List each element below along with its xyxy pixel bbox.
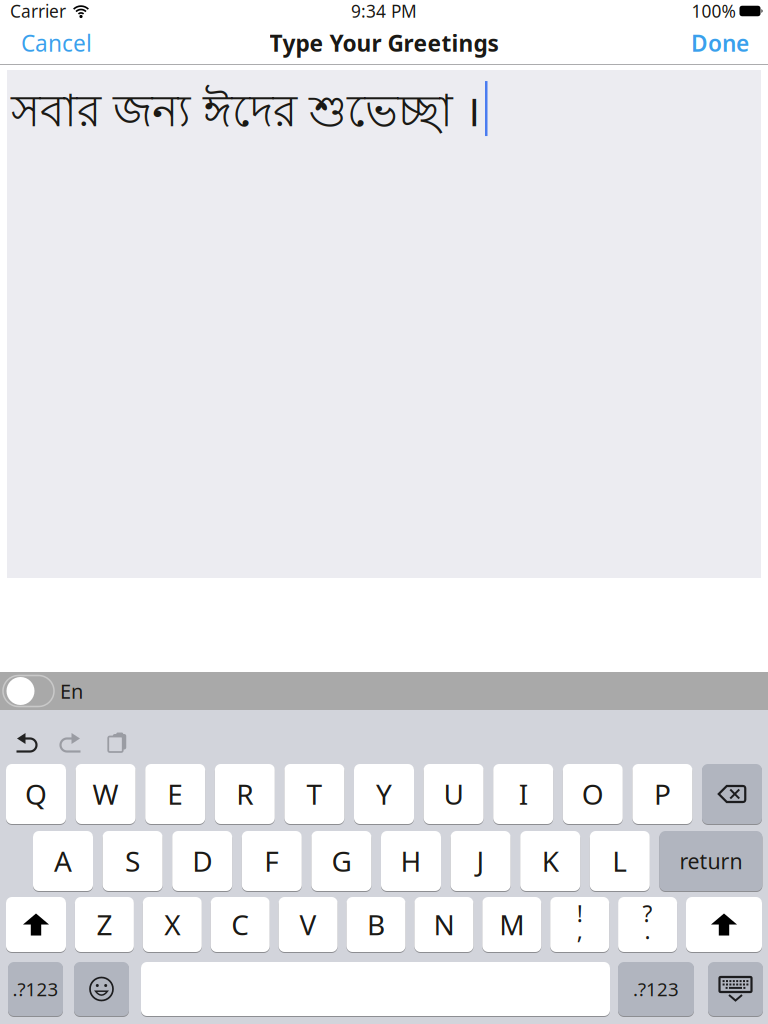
button[interactable]: B	[346, 897, 405, 952]
staticText: Carrier	[10, 0, 66, 22]
staticText: C	[231, 906, 249, 943]
staticText: return	[679, 847, 742, 875]
staticText: P	[654, 775, 671, 813]
button[interactable]: Undo	[15, 732, 38, 753]
staticText: Z	[96, 906, 112, 943]
button[interactable]: Paste	[82, 731, 130, 753]
button[interactable]: I	[493, 764, 553, 824]
staticText: .?123	[633, 977, 679, 1001]
staticText: A	[54, 842, 72, 880]
staticText: W	[93, 775, 119, 813]
button[interactable]: Shift	[686, 897, 762, 952]
staticText: F	[264, 842, 279, 880]
button[interactable]: S	[103, 831, 163, 891]
staticText: S	[125, 842, 140, 880]
button[interactable]: E	[145, 764, 205, 824]
button[interactable]: U	[424, 764, 484, 824]
button[interactable]: Delete	[702, 764, 762, 824]
staticText: D	[192, 842, 212, 880]
button[interactable]: .?123	[8, 962, 63, 1016]
button[interactable]: N	[414, 897, 473, 952]
button[interactable]: X	[143, 897, 202, 952]
button[interactable]: return	[659, 831, 762, 891]
button[interactable]: ?	[618, 897, 677, 952]
staticText: Cancel	[21, 28, 92, 58]
button[interactable]: W	[76, 764, 136, 824]
button[interactable]: O	[563, 764, 623, 824]
button[interactable]: Hide Keyboard	[708, 962, 763, 1016]
button[interactable]: Shift	[6, 897, 66, 952]
staticText: X	[164, 906, 180, 943]
button[interactable]: Switch keyboard language	[2, 675, 55, 706]
button[interactable]: Z	[75, 897, 134, 952]
button[interactable]: P	[632, 764, 692, 824]
button[interactable]: T	[284, 764, 344, 824]
button[interactable]: Cancel	[21, 28, 92, 58]
button[interactable]: Redo	[38, 732, 82, 753]
staticText: সবার জন্য ঈদের শুভেচ্ছা ।	[11, 80, 481, 144]
staticText: K	[542, 842, 559, 880]
staticText: R	[236, 775, 253, 813]
button[interactable]: J	[451, 831, 511, 891]
button[interactable]: F	[242, 831, 302, 891]
staticText: 100%	[691, 0, 735, 22]
staticText: ,	[577, 915, 583, 946]
staticText: Y	[376, 775, 392, 813]
button[interactable]: H	[381, 831, 441, 891]
button[interactable]: D	[172, 831, 232, 891]
staticText: J	[477, 842, 485, 880]
button[interactable]: .?123	[618, 962, 694, 1016]
staticText: E	[167, 775, 183, 813]
staticText: .?123	[12, 977, 58, 1001]
button[interactable]: Y	[354, 764, 414, 824]
staticText: B	[367, 906, 385, 943]
button[interactable]: M	[482, 897, 541, 952]
button[interactable]: G	[311, 831, 371, 891]
staticText: N	[433, 906, 454, 943]
staticText: 9:34 PM	[351, 0, 417, 22]
staticText: ?	[643, 898, 653, 928]
staticText: Type Your Greetings	[269, 28, 498, 58]
button[interactable]: C	[211, 897, 270, 952]
button[interactable]: Q	[6, 764, 66, 824]
staticText: U	[444, 775, 464, 813]
staticText: .	[645, 915, 651, 946]
staticText: T	[306, 775, 322, 813]
staticText: Q	[25, 775, 47, 813]
button[interactable]: R	[215, 764, 275, 824]
button[interactable]: K	[520, 831, 580, 891]
staticText: H	[400, 842, 421, 880]
button[interactable]: V	[279, 897, 338, 952]
staticText: M	[499, 906, 524, 943]
staticText: O	[582, 775, 604, 813]
button[interactable]: Emoji	[74, 962, 129, 1016]
staticText: !	[577, 898, 583, 928]
staticText: G	[331, 842, 351, 880]
staticText: L	[612, 842, 627, 880]
staticText: I	[519, 775, 528, 813]
staticText: Done	[691, 28, 749, 58]
button[interactable]: L	[590, 831, 650, 891]
staticText: En	[60, 678, 83, 704]
button[interactable]: Done	[691, 28, 749, 58]
button[interactable]: A	[33, 831, 93, 891]
staticText: V	[300, 906, 317, 943]
button[interactable]: !	[550, 897, 609, 952]
